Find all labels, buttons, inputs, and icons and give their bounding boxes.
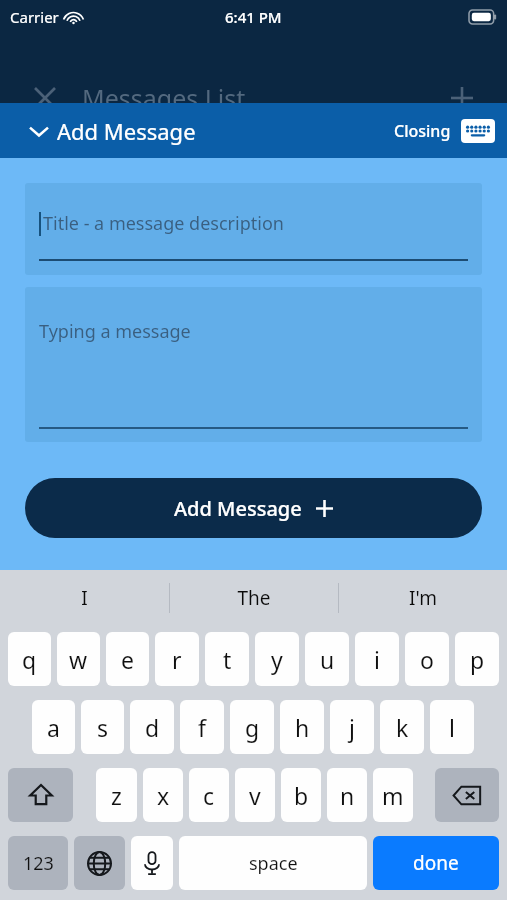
- button[interactable]: b: [281, 768, 321, 822]
- button[interactable]: k: [380, 700, 424, 754]
- button[interactable]: o: [405, 632, 449, 686]
- button[interactable]: h: [280, 700, 324, 754]
- button[interactable]: q: [8, 632, 51, 686]
- staticText: q: [22, 644, 37, 675]
- staticText: h: [295, 712, 310, 743]
- staticText: done: [413, 850, 459, 876]
- button[interactable]: Next keyboard: [74, 836, 125, 890]
- staticText: n: [340, 780, 355, 811]
- button[interactable]: u: [305, 632, 349, 686]
- button[interactable]: v: [235, 768, 275, 822]
- button[interactable]: f: [180, 700, 224, 754]
- staticText: d: [145, 712, 160, 743]
- staticText: w: [69, 644, 88, 675]
- staticText: Add Message: [174, 495, 302, 522]
- staticText: f: [198, 712, 206, 743]
- button[interactable]: z: [96, 768, 137, 822]
- button[interactable]: I'm: [339, 570, 507, 625]
- button[interactable]: w: [57, 632, 100, 686]
- staticText: Title - a message description: [43, 211, 284, 236]
- staticText: k: [396, 712, 409, 743]
- button[interactable]: a: [32, 700, 75, 754]
- button[interactable]: j: [330, 700, 374, 754]
- staticText: l: [449, 712, 455, 743]
- staticText: g: [245, 712, 260, 743]
- button[interactable]: Dictation: [131, 836, 173, 890]
- staticText: Typing a message: [39, 319, 191, 344]
- button[interactable]: m: [373, 768, 413, 822]
- staticText: r: [172, 644, 182, 675]
- button[interactable]: space: [179, 836, 367, 890]
- staticText: z: [111, 780, 122, 811]
- staticText: I'm: [409, 585, 437, 611]
- button[interactable]: done: [373, 836, 499, 890]
- staticText: 6:41 PM: [225, 7, 282, 27]
- button[interactable]: c: [189, 768, 229, 822]
- staticText: u: [320, 644, 335, 675]
- staticText: j: [349, 712, 355, 743]
- button[interactable]: Add: [447, 83, 477, 113]
- button[interactable]: p: [455, 632, 499, 686]
- staticText: Messages List: [82, 81, 246, 115]
- button[interactable]: Add Message: [30, 116, 196, 146]
- button[interactable]: y: [255, 632, 299, 686]
- button[interactable]: d: [130, 700, 174, 754]
- staticText: e: [121, 644, 134, 675]
- button[interactable]: I: [0, 570, 169, 625]
- button[interactable]: Typing a message: [25, 287, 482, 442]
- staticText: v: [249, 780, 261, 811]
- button[interactable]: Closing: [394, 119, 495, 143]
- button[interactable]: r: [155, 632, 199, 686]
- staticText: i: [374, 644, 380, 675]
- button[interactable]: The: [170, 570, 338, 625]
- staticText: t: [223, 644, 232, 675]
- staticText: p: [470, 644, 485, 675]
- other: Hide keyboard: [461, 119, 495, 143]
- staticText: Closing: [394, 120, 451, 142]
- staticText: s: [97, 712, 109, 743]
- staticText: I: [81, 585, 88, 611]
- staticText: b: [294, 780, 309, 811]
- staticText: Carrier: [10, 7, 59, 27]
- button[interactable]: g: [230, 700, 274, 754]
- button[interactable]: Close: [30, 83, 60, 113]
- button[interactable]: t: [205, 632, 249, 686]
- button[interactable]: Shift: [8, 768, 73, 822]
- button[interactable]: l: [430, 700, 474, 754]
- staticText: 123: [23, 851, 54, 876]
- button[interactable]: Title - a message description: [25, 183, 482, 275]
- button[interactable]: n: [327, 768, 367, 822]
- staticText: m: [382, 780, 404, 811]
- staticText: y: [271, 644, 283, 675]
- staticText: Add Message: [57, 116, 196, 146]
- staticText: space: [249, 851, 298, 876]
- staticText: The: [237, 585, 271, 611]
- staticText: x: [157, 780, 170, 811]
- button[interactable]: 123: [8, 836, 68, 890]
- button[interactable]: Add Message: [25, 478, 482, 538]
- button[interactable]: i: [355, 632, 399, 686]
- staticText: c: [203, 780, 215, 811]
- button[interactable]: s: [81, 700, 124, 754]
- staticText: o: [420, 644, 434, 675]
- staticText: a: [47, 712, 60, 743]
- button[interactable]: e: [106, 632, 149, 686]
- button[interactable]: Backspace: [435, 768, 499, 822]
- button[interactable]: x: [143, 768, 183, 822]
